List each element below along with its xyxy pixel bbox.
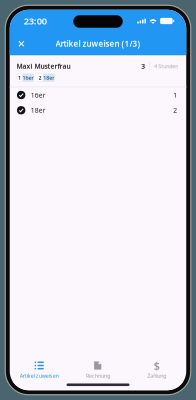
staticText: 1 [18,74,21,81]
staticText: 16er [31,91,46,99]
staticText: 23:00 [24,15,47,27]
button[interactable]: Artikel zuweisen [10,359,69,381]
staticText: 4 Stunden [154,63,178,70]
staticText: Zahlung [147,372,166,379]
staticText: 1 [173,91,177,99]
staticText: 3 [141,62,145,71]
button[interactable]: 18er [10,103,186,118]
button[interactable]: 16er [10,87,186,103]
staticText: 2 [173,106,177,115]
staticText: Rechnung [86,372,110,379]
button[interactable]: Rechnung [69,359,127,381]
staticText: 18er [43,74,54,81]
staticText: 16er [23,74,34,81]
staticText: Maxi Musterfrau [17,62,71,70]
staticText: Artikel zuweisen (1/3) [55,38,140,49]
staticText: 18er [31,106,46,115]
button[interactable]: Schließen [14,36,29,51]
staticText: Artikel zuweisen [20,372,59,379]
button[interactable]: $ [127,359,186,381]
staticText: 2 [38,74,41,81]
staticText: $ [154,358,160,373]
